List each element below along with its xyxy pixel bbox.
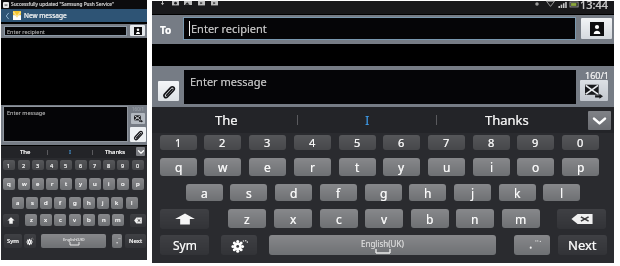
button[interactable]: a bbox=[12, 197, 24, 209]
button[interactable]: Space bbox=[269, 235, 496, 255]
button[interactable]: g bbox=[365, 184, 402, 201]
button[interactable]: Sym bbox=[160, 235, 209, 255]
button[interactable]: 0 bbox=[562, 135, 599, 150]
button[interactable]: Shift bbox=[3, 214, 19, 227]
button[interactable]: q bbox=[3, 178, 15, 190]
button[interactable]: I bbox=[298, 107, 436, 133]
button[interactable]: f bbox=[54, 197, 66, 209]
button[interactable]: 3 bbox=[249, 135, 286, 150]
button[interactable]: 9 bbox=[117, 160, 129, 170]
button[interactable]: Period bbox=[514, 235, 550, 255]
button[interactable]: Attach bbox=[158, 81, 179, 101]
button[interactable]: 4 bbox=[46, 160, 58, 170]
button[interactable]: e bbox=[32, 178, 44, 190]
button[interactable]: r bbox=[294, 158, 331, 176]
button[interactable]: Expand suggestions bbox=[136, 147, 145, 156]
button[interactable]: h bbox=[83, 197, 95, 209]
button[interactable]: p bbox=[562, 158, 599, 176]
button[interactable]: t bbox=[60, 178, 72, 190]
button[interactable]: e bbox=[249, 158, 286, 176]
button[interactable]: w bbox=[18, 178, 30, 190]
button[interactable]: u bbox=[89, 178, 101, 190]
button[interactable]: k bbox=[111, 197, 123, 209]
button[interactable]: Settings bbox=[221, 235, 257, 255]
button[interactable]: Next bbox=[125, 234, 146, 248]
button[interactable]: 6 bbox=[383, 135, 420, 150]
button[interactable]: i bbox=[473, 158, 510, 176]
button[interactable]: Settings bbox=[24, 234, 36, 248]
button[interactable]: 8 bbox=[103, 160, 115, 170]
button[interactable]: Space bbox=[41, 234, 106, 248]
button[interactable]: Shift bbox=[160, 209, 209, 229]
button[interactable]: Contacts bbox=[581, 18, 612, 39]
button[interactable]: Attach bbox=[130, 127, 146, 142]
button[interactable]: y bbox=[75, 178, 87, 190]
button[interactable]: p bbox=[132, 178, 144, 190]
button[interactable]: c bbox=[320, 209, 358, 228]
button[interactable]: h bbox=[409, 184, 446, 201]
button[interactable]: 9 bbox=[517, 135, 554, 150]
button[interactable]: i bbox=[103, 178, 115, 190]
button[interactable]: n bbox=[98, 214, 110, 226]
button[interactable]: 7 bbox=[89, 160, 101, 170]
button[interactable]: Thanks bbox=[437, 107, 577, 133]
button[interactable]: 3 bbox=[32, 160, 44, 170]
button[interactable]: Thanks bbox=[93, 146, 137, 158]
button[interactable]: z bbox=[25, 214, 37, 226]
button[interactable]: s bbox=[26, 197, 38, 209]
button[interactable]: x bbox=[40, 214, 52, 226]
button[interactable]: 2 bbox=[204, 135, 241, 150]
button[interactable]: l bbox=[543, 184, 580, 201]
button[interactable]: a bbox=[186, 184, 223, 201]
button[interactable]: l bbox=[126, 197, 138, 209]
button[interactable]: 1 bbox=[3, 160, 15, 170]
button[interactable]: The bbox=[156, 107, 296, 133]
button[interactable]: y bbox=[383, 158, 420, 176]
button[interactable]: x bbox=[274, 209, 312, 228]
button[interactable]: w bbox=[204, 158, 241, 176]
button[interactable]: Expand suggestions bbox=[588, 111, 611, 130]
button[interactable]: q bbox=[160, 158, 197, 176]
button[interactable]: 2 bbox=[18, 160, 30, 170]
button[interactable]: v bbox=[365, 209, 403, 228]
button[interactable]: o bbox=[517, 158, 554, 176]
button[interactable]: u bbox=[428, 158, 465, 176]
button[interactable]: t bbox=[339, 158, 376, 176]
button[interactable]: Backspace bbox=[130, 214, 146, 227]
button[interactable]: c bbox=[54, 214, 66, 226]
button[interactable]: n bbox=[456, 209, 494, 228]
button[interactable]: Sym bbox=[4, 234, 22, 248]
button[interactable]: 5 bbox=[339, 135, 376, 150]
button[interactable]: r bbox=[46, 178, 58, 190]
button[interactable]: Period bbox=[112, 234, 122, 248]
button[interactable]: 1 bbox=[160, 135, 197, 150]
button[interactable]: d bbox=[40, 197, 52, 209]
button[interactable]: b bbox=[411, 209, 449, 228]
button[interactable]: k bbox=[499, 184, 536, 201]
button[interactable]: Enter message bbox=[184, 70, 576, 104]
button[interactable]: Back bbox=[3, 11, 12, 20]
button[interactable]: 6 bbox=[75, 160, 87, 170]
button[interactable]: s bbox=[230, 184, 267, 201]
button[interactable]: I bbox=[48, 146, 92, 158]
button[interactable]: m bbox=[502, 209, 540, 228]
button[interactable]: Backspace bbox=[557, 209, 606, 229]
button[interactable]: Enter message bbox=[4, 107, 127, 141]
button[interactable]: Next bbox=[558, 235, 607, 255]
button[interactable]: Enter recipient bbox=[184, 18, 575, 39]
button[interactable]: f bbox=[320, 184, 357, 201]
button[interactable]: j bbox=[454, 184, 491, 201]
button[interactable]: 0 bbox=[132, 160, 144, 170]
button[interactable]: z bbox=[228, 209, 266, 228]
button[interactable]: 4 bbox=[294, 135, 331, 150]
button[interactable]: o bbox=[117, 178, 129, 190]
button[interactable]: b bbox=[83, 214, 95, 226]
button[interactable]: 8 bbox=[473, 135, 510, 150]
button[interactable]: Contacts bbox=[130, 25, 145, 36]
button[interactable]: Send bbox=[131, 113, 145, 124]
button[interactable]: v bbox=[69, 214, 81, 226]
button[interactable]: d bbox=[275, 184, 312, 201]
button[interactable]: g bbox=[69, 197, 81, 209]
button[interactable]: 5 bbox=[60, 160, 72, 170]
button[interactable]: 7 bbox=[428, 135, 465, 150]
